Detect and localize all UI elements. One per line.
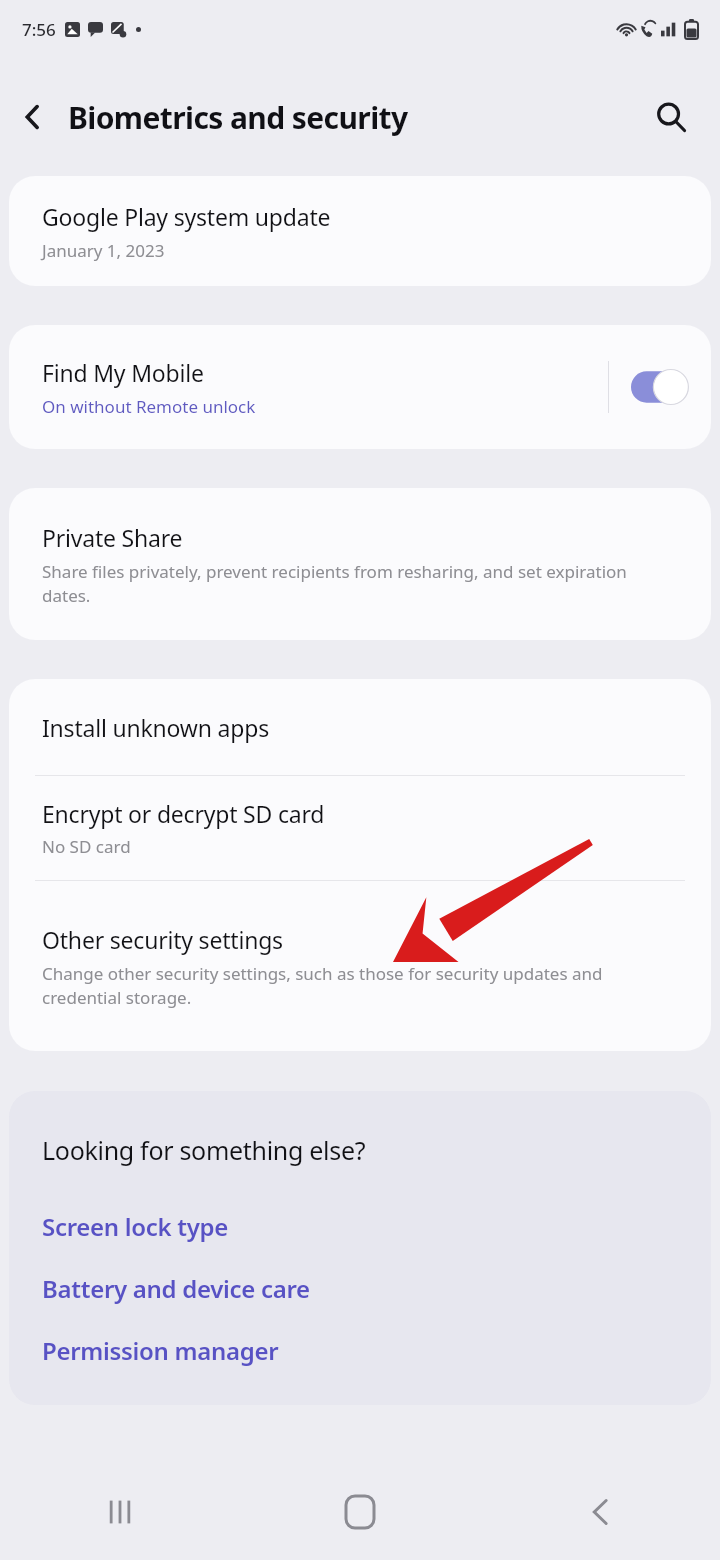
staticText: Install unknown apps — [42, 712, 269, 743]
staticText: On without Remote unlock — [42, 395, 256, 418]
button[interactable]: Back — [0, 84, 66, 150]
staticText: Find My Mobile — [42, 357, 204, 388]
staticText: Permission manager — [42, 1334, 279, 1367]
button[interactable]: Search — [640, 86, 702, 148]
staticText: No SD card — [42, 835, 131, 858]
button[interactable]: Find My Mobile — [9, 325, 711, 449]
button[interactable]: Screen lock type — [42, 1195, 711, 1257]
button[interactable]: Google Play system update — [9, 176, 711, 286]
staticText: Private Share — [42, 522, 183, 553]
button[interactable]: Other security settings — [9, 881, 711, 1051]
staticText: Other security settings — [42, 924, 283, 955]
staticText: Google Play system update — [42, 201, 331, 232]
button[interactable]: Battery and device care — [42, 1257, 711, 1319]
staticText: Battery and device care — [42, 1272, 310, 1305]
staticText: Looking for something else? — [42, 1133, 366, 1167]
staticText: Screen lock type — [42, 1210, 228, 1243]
staticText: Biometrics and security — [68, 97, 408, 138]
staticText: January 1, 2023 — [42, 239, 165, 262]
button[interactable]: Install unknown apps — [9, 679, 711, 775]
button[interactable]: Recents — [0, 1464, 240, 1560]
button[interactable]: Private Share — [9, 488, 711, 640]
button[interactable]: Permission manager — [42, 1319, 711, 1381]
staticText: 7:56 — [22, 18, 56, 41]
staticText: Share files privately, prevent recipient… — [42, 560, 671, 607]
button[interactable]: Back — [480, 1464, 720, 1560]
staticText: Change other security settings, such as … — [42, 962, 651, 1009]
button[interactable]: Home — [240, 1464, 480, 1560]
button[interactable]: Encrypt or decrypt SD card — [9, 776, 711, 880]
staticText: Encrypt or decrypt SD card — [42, 798, 325, 829]
button[interactable]: Find My Mobile toggle — [631, 370, 687, 404]
